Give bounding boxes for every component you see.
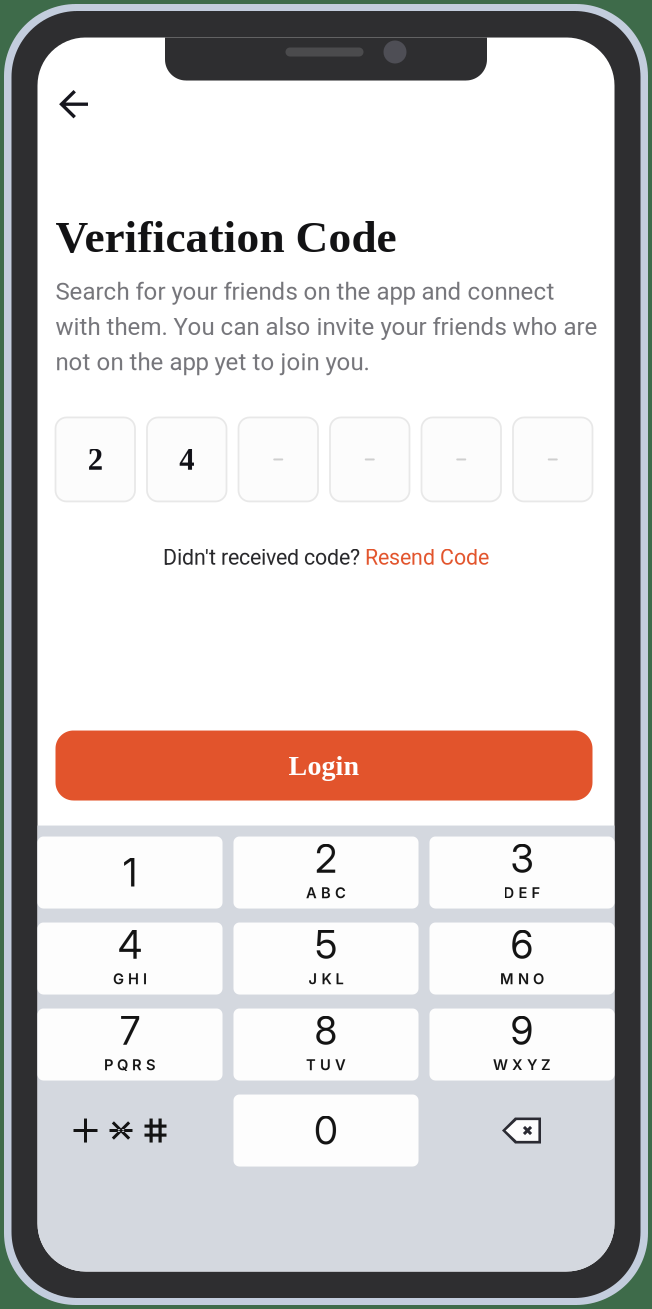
staticText: 9 (510, 1007, 533, 1054)
staticText: A B C (306, 884, 346, 902)
button[interactable]: 5 (233, 922, 418, 994)
staticText: W X Y Z (493, 1056, 551, 1074)
button[interactable]: 0 (233, 1094, 418, 1166)
staticText: Login (288, 750, 359, 781)
staticText: 2 (315, 835, 337, 882)
staticText: Resend Code (365, 542, 489, 574)
staticText: D E F (503, 884, 540, 902)
staticText: Didn't received code? (163, 542, 365, 574)
staticText: 1 (123, 849, 137, 896)
staticText: T U V (306, 1056, 346, 1074)
staticText: Search for your friends on the app and c… (55, 275, 597, 380)
staticText: P Q R S (104, 1056, 156, 1074)
button[interactable]: 3 (429, 836, 614, 908)
button[interactable]: 6 (429, 922, 614, 994)
button[interactable]: 9 (429, 1008, 614, 1080)
staticText: Verification Code (55, 211, 396, 262)
staticText: 0 (314, 1107, 338, 1154)
button[interactable]: Symbols (37, 1094, 222, 1166)
button[interactable]: Login (55, 730, 592, 800)
staticText: 6 (510, 921, 533, 968)
staticText: 5 (315, 921, 337, 968)
staticText: 2 (88, 442, 103, 476)
staticText: G H I (113, 970, 147, 988)
button[interactable]: Back (37, 37, 102, 132)
staticText: 7 (120, 1007, 140, 1054)
button[interactable]: 4 (37, 922, 222, 994)
button[interactable]: 8 (233, 1008, 418, 1080)
staticText: J K L (308, 970, 343, 988)
button[interactable]: 7 (37, 1008, 222, 1080)
staticText: 8 (314, 1007, 337, 1054)
button[interactable]: 1 (37, 836, 222, 908)
button[interactable]: Resend Code (365, 542, 489, 574)
button[interactable]: 2 (233, 836, 418, 908)
staticText: M N O (500, 970, 544, 988)
staticText: 4 (179, 442, 194, 476)
staticText: 3 (510, 835, 533, 882)
staticText: 4 (118, 921, 142, 968)
button[interactable]: Delete (429, 1094, 614, 1166)
